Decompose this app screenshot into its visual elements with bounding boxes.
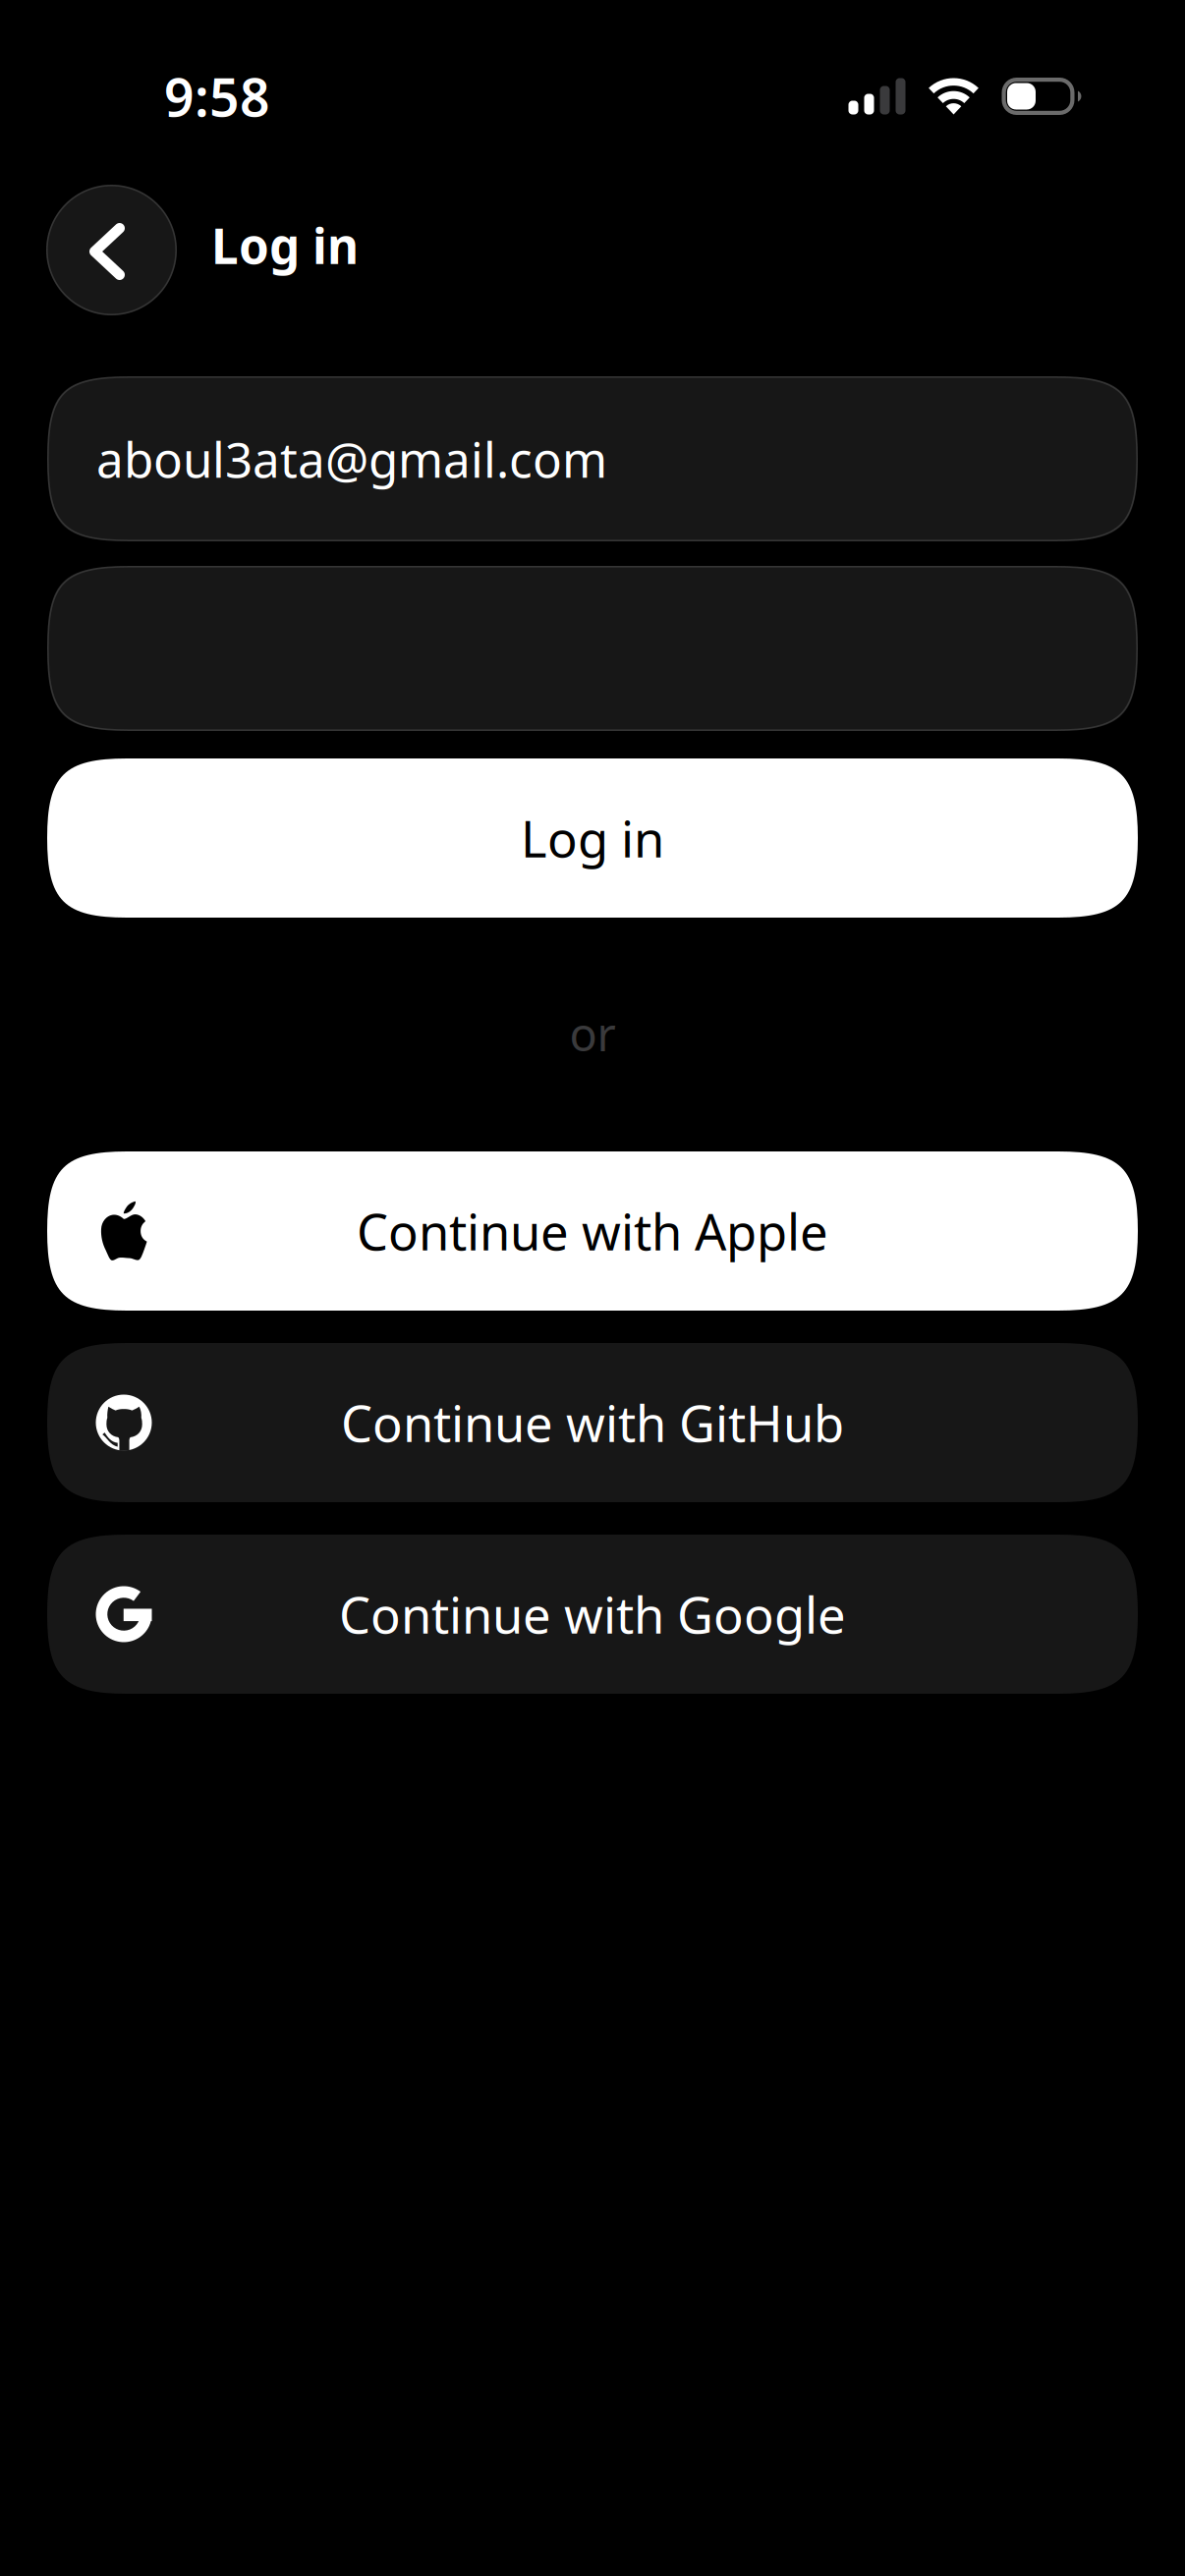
button[interactable]: Back <box>46 185 177 315</box>
staticText: Continue with GitHub <box>341 1390 844 1456</box>
button[interactable]: Continue with Apple <box>47 1151 1138 1311</box>
staticText: Log in <box>211 213 359 277</box>
staticText: Continue with Apple <box>357 1198 828 1264</box>
staticText: Continue with Google <box>339 1581 846 1647</box>
button[interactable]: Continue with Google <box>47 1535 1138 1694</box>
staticText: Log in <box>521 805 664 871</box>
staticText: or <box>569 1003 616 1064</box>
button[interactable]: Continue with GitHub <box>47 1343 1138 1502</box>
staticText: aboul3ata@gmail.com <box>96 427 607 491</box>
staticText: 9:58 <box>164 62 270 131</box>
button[interactable]: Log in <box>47 758 1138 918</box>
